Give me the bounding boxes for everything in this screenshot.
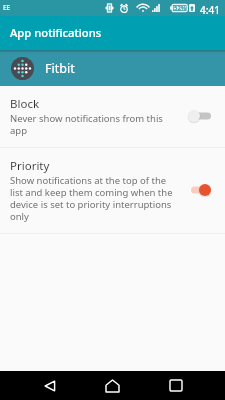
button[interactable]: Recent apps — [153, 371, 198, 400]
button[interactable]: Block — [0, 86, 225, 147]
staticText: 52% — [174, 4, 187, 12]
button[interactable]: Priority on — [188, 183, 211, 197]
staticText: 4:41 — [200, 3, 220, 17]
button[interactable]: Back — [28, 371, 72, 400]
staticText: App notifications — [10, 25, 102, 40]
button[interactable]: Home — [90, 371, 135, 400]
staticText: Never show notifications from this app — [10, 112, 176, 137]
button[interactable]: Block off — [188, 109, 211, 123]
staticText: Block — [10, 96, 40, 112]
staticText: Fitbit — [45, 60, 75, 77]
button[interactable]: Priority — [0, 148, 225, 233]
staticText: EE — [3, 3, 11, 12]
button[interactable]: Fitbit — [0, 50, 225, 86]
staticText: Show notifications at the top of the lis… — [10, 174, 176, 223]
staticText: Priority — [10, 158, 50, 174]
